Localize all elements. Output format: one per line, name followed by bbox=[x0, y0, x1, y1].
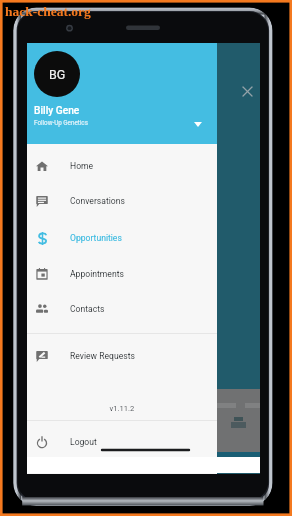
staticText: v1.11.2 bbox=[27, 404, 217, 413]
staticText: Home bbox=[70, 161, 94, 171]
button[interactable]: Conversations bbox=[27, 183, 217, 218]
button[interactable]: Logout bbox=[27, 424, 217, 459]
staticText: hack-cheat.org bbox=[5, 4, 91, 19]
staticText: Follow-Up Genetics bbox=[34, 119, 88, 126]
staticText: Opportunities bbox=[70, 233, 122, 243]
button[interactable]: BG bbox=[27, 43, 217, 144]
button[interactable]: Home bbox=[27, 148, 217, 183]
button[interactable]: Opportunities bbox=[27, 220, 217, 255]
staticText: Appointments bbox=[70, 269, 124, 279]
staticText: Logout bbox=[70, 437, 97, 447]
staticText: BG bbox=[49, 67, 66, 82]
staticText: Conversations bbox=[70, 196, 125, 206]
button[interactable]: Appointments bbox=[27, 256, 217, 291]
staticText: Review Requests bbox=[70, 351, 135, 361]
button[interactable]: Contacts bbox=[27, 291, 217, 326]
staticText: Billy Gene bbox=[34, 105, 80, 117]
staticText: Contacts bbox=[70, 304, 105, 314]
button[interactable]: Review Requests bbox=[27, 338, 217, 373]
button[interactable]: Close navigation drawer bbox=[237, 81, 257, 101]
